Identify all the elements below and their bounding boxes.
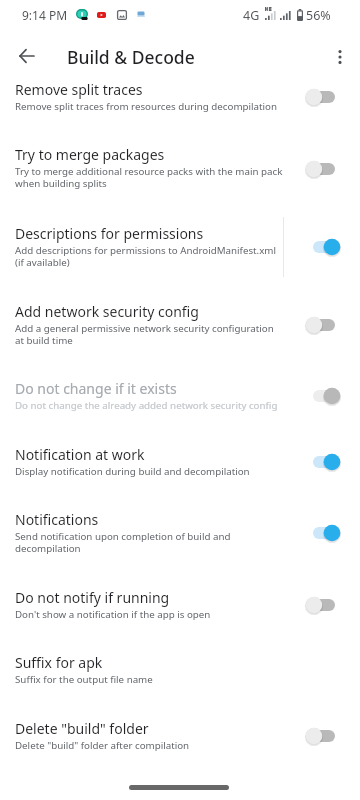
- staticText: Do not notify if running: [15, 588, 170, 607]
- staticText: Don't show a notification if the app is …: [15, 608, 211, 621]
- button[interactable]: Notification at work: [0, 429, 360, 494]
- staticText: Notification at work: [15, 445, 145, 464]
- button[interactable]: Do not change if it exists: [0, 363, 360, 429]
- staticText: 9:14 PM: [22, 7, 68, 23]
- button[interactable]: Remove split traces: [0, 64, 360, 129]
- staticText: Try to merge additional resource packs w…: [15, 165, 285, 190]
- button[interactable]: Suffix for apk: [0, 637, 360, 703]
- staticText: 56%: [306, 7, 331, 24]
- staticText: Delete "build" folder: [15, 719, 149, 738]
- staticText: Suffix for apk: [15, 653, 103, 672]
- button[interactable]: Try to merge packages: [0, 129, 360, 208]
- staticText: Descriptions for permissions: [15, 224, 204, 243]
- staticText: Add descriptions for permissions to Andr…: [15, 244, 285, 269]
- button[interactable]: Add network security config: [0, 286, 360, 363]
- button[interactable]: Descriptions for permissions: [0, 208, 360, 286]
- staticText: Send notification upon completion of bui…: [15, 530, 285, 555]
- staticText: Remove split traces from resources durin…: [15, 100, 277, 113]
- button[interactable]: Toggle setting: [303, 232, 345, 262]
- button[interactable]: Navigate up: [8, 38, 44, 73]
- button[interactable]: Toggle setting: [303, 721, 345, 751]
- staticText: Display notification during build and de…: [15, 465, 250, 478]
- button[interactable]: Delete "build" folder: [0, 703, 360, 769]
- button[interactable]: Toggle setting: [303, 518, 345, 548]
- staticText: Add a general permissive network securit…: [15, 322, 285, 347]
- staticText: Build & Decode: [67, 45, 195, 69]
- button[interactable]: Toggle setting: [303, 310, 345, 340]
- button[interactable]: More options: [322, 39, 358, 74]
- button[interactable]: Toggle setting: [303, 447, 345, 477]
- button[interactable]: Toggle setting: [303, 154, 345, 184]
- button[interactable]: Do not notify if running: [0, 572, 360, 637]
- staticText: Do not change if it exists: [15, 379, 177, 398]
- staticText: Suffix for the output file name: [15, 673, 153, 686]
- staticText: 4G: [243, 7, 260, 24]
- button[interactable]: Toggle setting: [303, 82, 345, 112]
- staticText: Try to merge packages: [15, 145, 165, 164]
- staticText: Notifications: [15, 510, 99, 529]
- staticText: Remove split traces: [15, 80, 143, 99]
- staticText: Delete "build" folder after compilation: [15, 739, 190, 752]
- button[interactable]: Toggle setting: [303, 590, 345, 620]
- button[interactable]: Notifications: [0, 494, 360, 572]
- staticText: Do not change the already added network …: [15, 399, 278, 412]
- button[interactable]: Toggle setting: [303, 381, 345, 411]
- staticText: Add network security config: [15, 302, 199, 321]
